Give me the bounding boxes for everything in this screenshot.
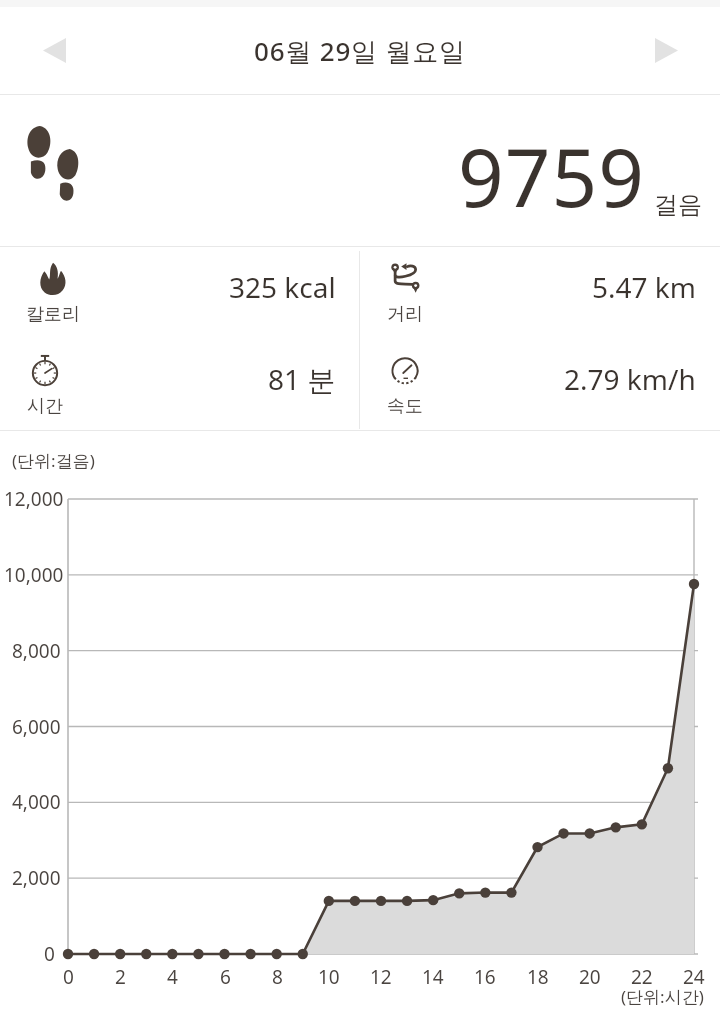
staticText: 20 <box>579 964 601 990</box>
staticText: 6 <box>220 964 231 990</box>
button[interactable]: 칼로리 <box>0 247 360 339</box>
staticText: 6,000 <box>12 714 61 740</box>
button[interactable]: 속도 <box>360 339 720 431</box>
staticText: 24 <box>683 964 705 990</box>
button[interactable]: 시간 <box>0 339 360 431</box>
staticText: 4,000 <box>12 789 61 815</box>
staticText: 14 <box>422 964 444 990</box>
staticText: 22 <box>631 964 653 990</box>
staticText: 2 <box>115 964 126 990</box>
button[interactable]: Previous day <box>16 12 92 88</box>
staticText: 06월 29일 월요일 <box>254 33 466 69</box>
staticText: 12 <box>370 964 392 990</box>
staticText: 4 <box>167 964 178 990</box>
staticText: 속도 <box>387 395 423 418</box>
staticText: 8 <box>272 964 283 990</box>
button[interactable]: 거리 <box>360 247 720 339</box>
button[interactable]: 9759 <box>0 95 720 247</box>
staticText: 칼로리 <box>26 303 80 326</box>
staticText: 8,000 <box>12 638 61 664</box>
staticText: 81 분 <box>268 360 336 398</box>
staticText: 16 <box>474 964 496 990</box>
staticText: 0 <box>44 941 55 967</box>
staticText: 18 <box>527 964 549 990</box>
staticText: 12,000 <box>4 486 64 512</box>
staticText: 10 <box>318 964 340 990</box>
staticText: 10,000 <box>4 562 64 588</box>
staticText: 325 kcal <box>229 268 336 306</box>
staticText: 거리 <box>387 303 423 326</box>
staticText: 시간 <box>27 395 63 418</box>
staticText: (단위:걸음) <box>12 449 95 472</box>
staticText: 2,000 <box>12 865 61 891</box>
staticText: 걸음 <box>654 190 702 220</box>
button[interactable]: (단위:걸음) <box>0 431 720 1016</box>
staticText: 5.47 km <box>592 268 696 306</box>
button[interactable]: Next day <box>628 12 704 88</box>
staticText: 2.79 km/h <box>564 360 696 398</box>
staticText: 9759 <box>458 121 646 230</box>
staticText: 0 <box>63 964 74 990</box>
staticText: (단위:시간) <box>621 985 704 1008</box>
